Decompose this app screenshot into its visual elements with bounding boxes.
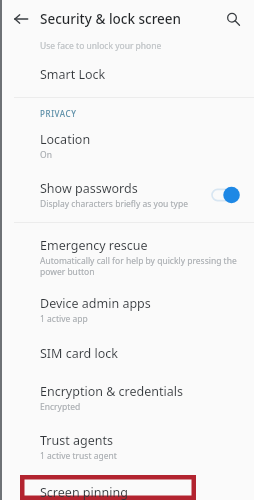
staticText: Emergency rescue bbox=[40, 237, 148, 254]
staticText: SIM card lock bbox=[40, 345, 119, 362]
button[interactable]: Smart Lock bbox=[0, 57, 254, 97]
button[interactable]: Device admin apps bbox=[0, 287, 254, 336]
button[interactable]: SIM card lock bbox=[0, 336, 254, 376]
button[interactable]: Show passwords bbox=[0, 172, 254, 219]
button[interactable]: Encryption & credentials bbox=[0, 376, 254, 424]
staticText: Show passwords bbox=[40, 180, 138, 197]
staticText: Automatically call for help by quickly p… bbox=[40, 255, 242, 277]
staticText: Use face to unlock your phone bbox=[40, 40, 162, 52]
button[interactable]: Trust agents bbox=[0, 424, 254, 471]
staticText: PRIVACY bbox=[40, 108, 77, 119]
staticText: Device admin apps bbox=[40, 295, 151, 312]
staticText: Security & lock screen bbox=[40, 10, 218, 28]
staticText: Encryption & credentials bbox=[40, 383, 183, 400]
staticText: Encrypted bbox=[40, 401, 81, 413]
staticText: 1 active trust agent bbox=[40, 450, 117, 462]
button[interactable]: Emergency rescue bbox=[0, 230, 254, 287]
staticText: Trust agents bbox=[40, 432, 113, 449]
button[interactable]: Use face to unlock your phone bbox=[0, 38, 254, 57]
staticText: Location bbox=[40, 131, 91, 148]
staticText: 1 active app bbox=[40, 313, 88, 325]
staticText: Screen pinning bbox=[40, 484, 128, 500]
button[interactable]: Screen pinning bbox=[20, 475, 196, 500]
button[interactable]: Search bbox=[218, 4, 248, 34]
staticText: On bbox=[40, 149, 52, 161]
button[interactable]: Location bbox=[0, 125, 254, 172]
staticText: Display characters briefly as you type bbox=[40, 198, 188, 210]
staticText: Smart Lock bbox=[40, 66, 106, 83]
button[interactable]: Show passwords toggle, on bbox=[212, 186, 242, 204]
button[interactable]: Back bbox=[6, 4, 36, 34]
